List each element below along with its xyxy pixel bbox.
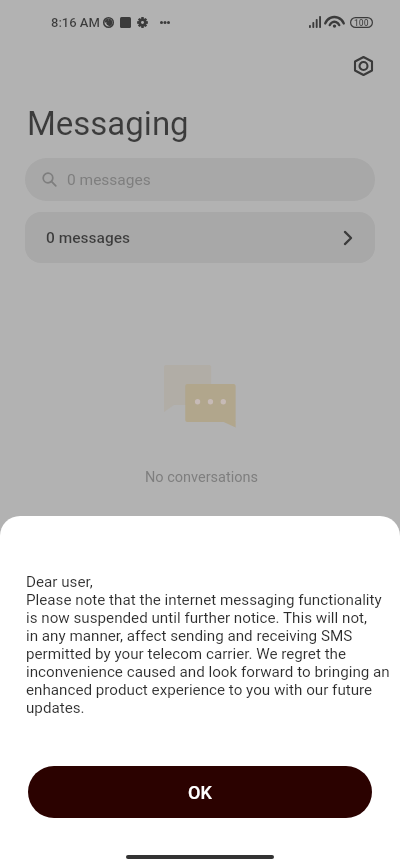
- staticText: Dear user, Please note that the internet…: [26, 573, 390, 717]
- staticText: No conversations: [145, 469, 259, 486]
- staticText: Messaging: [27, 104, 189, 143]
- button[interactable]: OK: [28, 766, 372, 818]
- button[interactable]: 0 messages: [25, 212, 375, 263]
- staticText: OK: [188, 782, 212, 803]
- staticText: 0 messages: [46, 229, 131, 247]
- staticText: 8:16 AM: [51, 15, 100, 30]
- staticText: 100: [354, 18, 369, 28]
- button[interactable]: 0 messages: [25, 158, 375, 201]
- button[interactable]: Settings: [345, 48, 381, 84]
- staticText: 0 messages: [67, 171, 151, 189]
